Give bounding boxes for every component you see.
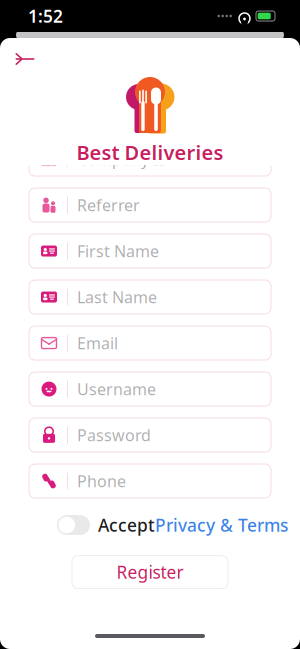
button[interactable]: Accept terms toggle: [57, 515, 90, 535]
staticText: Email: [77, 332, 118, 354]
staticText: Phone: [77, 470, 126, 492]
staticText: Last Name: [77, 286, 157, 308]
staticText: First Name: [77, 240, 159, 262]
button[interactable]: Confirm Password: [29, 510, 271, 544]
staticText: 1:52: [28, 4, 63, 27]
button[interactable]: Phone: [29, 464, 271, 498]
button[interactable]: Referrer: [29, 188, 271, 222]
staticText: Password: [77, 424, 151, 446]
button[interactable]: Privacy & Terms: [155, 514, 288, 537]
staticText: Confirm Password: [77, 516, 217, 538]
button[interactable]: Last Name: [29, 280, 271, 314]
button[interactable]: Back: [8, 44, 42, 74]
button[interactable]: First Name: [29, 234, 271, 268]
staticText: Privacy & Terms: [155, 514, 288, 537]
button[interactable]: Username: [29, 372, 271, 406]
staticText: Referrer: [77, 194, 140, 216]
staticText: Best Deliveries: [76, 139, 223, 166]
button[interactable]: Company ID: [29, 142, 271, 176]
staticText: Accept: [98, 514, 155, 537]
button[interactable]: Register: [72, 556, 228, 589]
button[interactable]: Email: [29, 326, 271, 360]
staticText: Register: [116, 561, 183, 584]
staticText: Company ID: [77, 148, 170, 170]
staticText: Username: [77, 378, 156, 400]
button[interactable]: Password: [29, 418, 271, 452]
